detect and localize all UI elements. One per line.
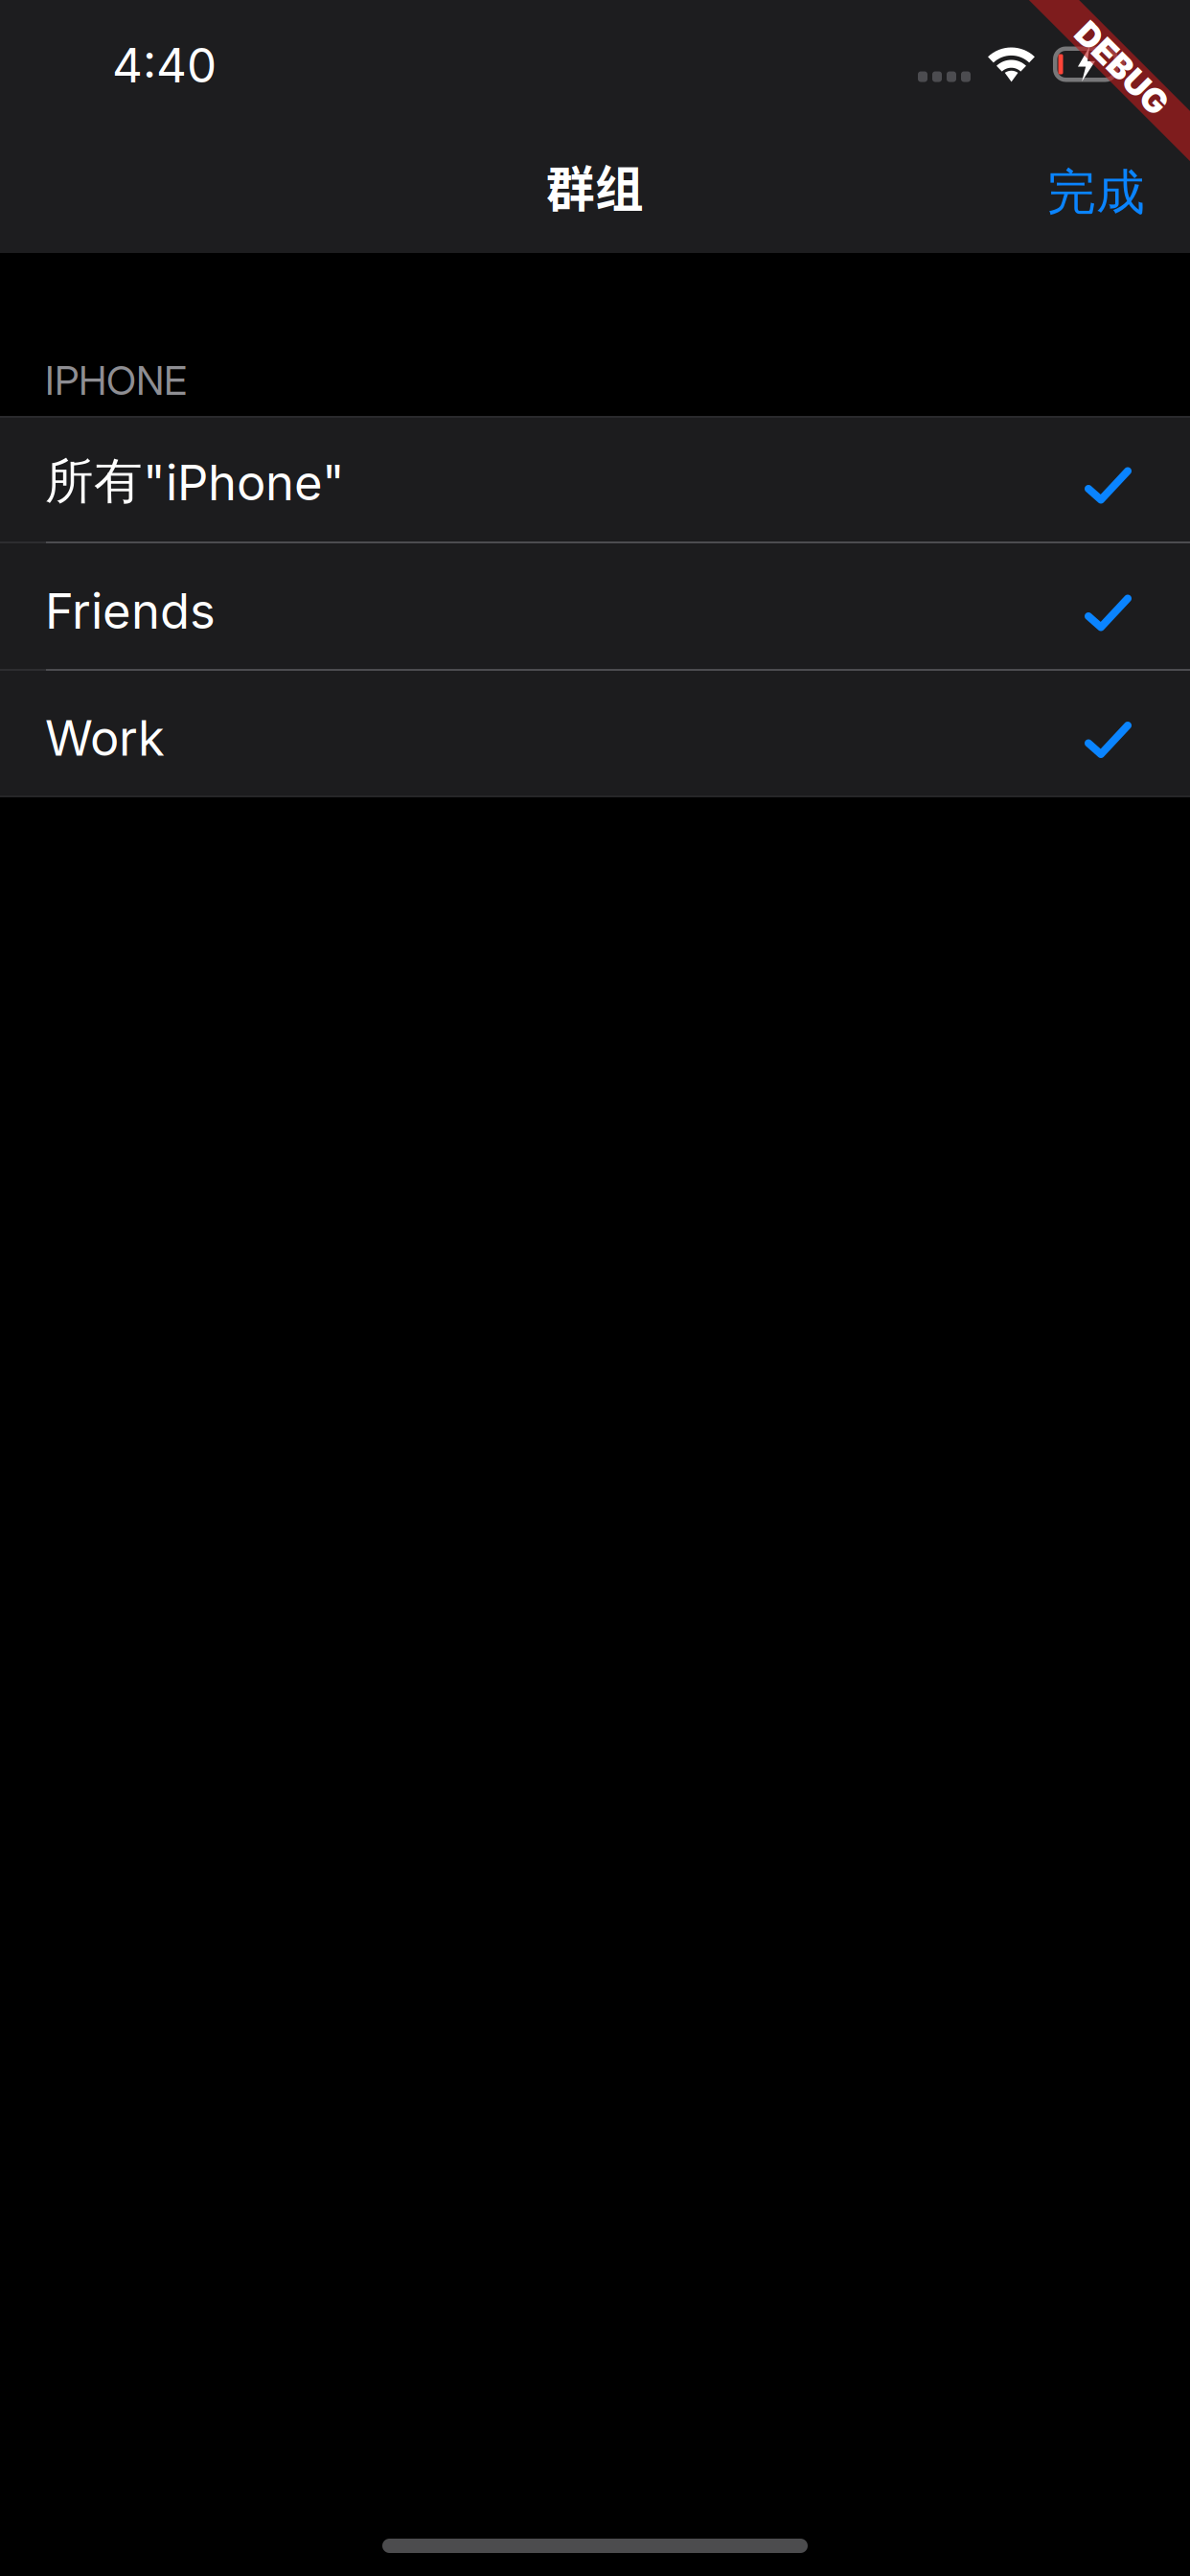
- button[interactable]: Friends: [0, 543, 1190, 671]
- staticText: 群组: [546, 151, 644, 221]
- staticText: 4:40: [112, 37, 217, 94]
- staticText: 完成: [1047, 162, 1145, 223]
- staticText: DEBUG: [1064, 48, 1180, 88]
- staticText: 所有"iPhone": [45, 451, 345, 512]
- button[interactable]: Work: [0, 671, 1190, 797]
- staticText: IPHONE: [45, 356, 187, 404]
- button[interactable]: 完成: [1047, 159, 1145, 220]
- staticText: Work: [45, 708, 165, 767]
- staticText: Friends: [45, 582, 216, 640]
- button[interactable]: 所有"iPhone": [0, 416, 1190, 543]
